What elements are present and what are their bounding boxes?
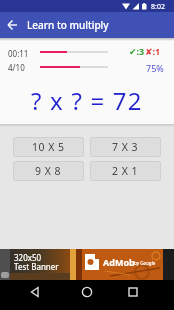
staticText: 10 X 5 [32,140,65,154]
button[interactable]: 7 X 3 [90,137,161,157]
staticText: 8:02 [151,2,165,12]
button[interactable] [4,16,22,34]
staticText: AdMob [103,256,135,268]
staticText: ✔:3 [129,45,145,57]
staticText: Test Banner [14,261,59,272]
staticText: 4/10 [8,62,25,73]
staticText: 2 X 1 [112,164,139,178]
staticText: 320x50 [14,252,42,263]
staticText: by Google [134,260,156,266]
staticText: 7 X 3 [112,140,139,154]
staticText: ? x ? = 72 [31,84,143,116]
staticText: Learn to multiply [27,18,109,32]
button[interactable] [27,284,43,300]
staticText: 75% [146,62,164,74]
button[interactable]: 320x50 [0,249,174,280]
button[interactable]: 9 X 8 [13,161,84,181]
button[interactable]: 2 X 1 [90,161,161,181]
button[interactable]: 10 X 5 [13,137,84,157]
button[interactable] [125,284,141,300]
staticText: 9 X 8 [35,164,62,178]
staticText: 00:11 [8,48,29,59]
button[interactable] [79,284,95,300]
staticText: ✘:1 [145,45,161,57]
